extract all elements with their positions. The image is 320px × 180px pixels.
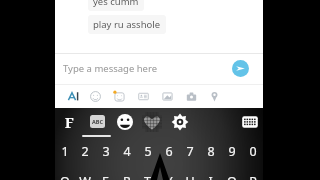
- button[interactable]: 3: [95, 142, 116, 160]
- staticText: 3: [102, 143, 110, 160]
- button[interactable]: Camera: [183, 88, 200, 105]
- button[interactable]: 7: [179, 142, 200, 160]
- staticText: P: [249, 173, 257, 180]
- staticText: 1: [61, 143, 69, 160]
- button[interactable]: Q: [55, 172, 75, 180]
- button[interactable]: Contact: [135, 88, 152, 105]
- button[interactable]: W: [75, 172, 95, 180]
- button[interactable]: 1: [55, 142, 75, 160]
- button[interactable]: P: [242, 172, 263, 180]
- staticText: Type a message here: [63, 62, 158, 75]
- button[interactable]: I: [200, 172, 221, 180]
- staticText: Y: [165, 173, 173, 180]
- button[interactable]: Stickers: [111, 88, 128, 105]
- staticText: 7: [186, 143, 194, 160]
- button[interactable]: 0: [242, 142, 263, 160]
- button[interactable]: play ru asshole: [88, 15, 166, 34]
- staticText: U: [185, 173, 195, 180]
- staticText: O: [227, 173, 237, 180]
- button[interactable]: GIFs: [142, 112, 162, 132]
- button[interactable]: SwiftKey: [59, 112, 79, 132]
- button[interactable]: Location: [206, 88, 223, 105]
- button[interactable]: R: [116, 172, 137, 180]
- button[interactable]: E: [95, 172, 116, 180]
- staticText: E: [102, 173, 109, 180]
- staticText: ABC: [92, 118, 103, 125]
- button[interactable]: O: [221, 172, 242, 180]
- staticText: R: [123, 173, 131, 180]
- button[interactable]: T: [137, 172, 158, 180]
- button[interactable]: Keyboard: [240, 112, 260, 132]
- button[interactable]: Send: [232, 60, 249, 77]
- button[interactable]: Text formatting: [64, 88, 81, 105]
- button[interactable]: 9: [221, 142, 242, 160]
- staticText: 5: [144, 143, 152, 160]
- staticText: F: [65, 113, 74, 132]
- button[interactable]: Emoji: [87, 88, 104, 105]
- staticText: T: [144, 173, 151, 180]
- button[interactable]: 6: [158, 142, 179, 160]
- staticText: 6: [165, 143, 173, 160]
- button[interactable]: 2: [75, 142, 95, 160]
- button[interactable]: 5: [137, 142, 158, 160]
- button[interactable]: Settings: [170, 112, 190, 132]
- button[interactable]: Type a message here: [55, 54, 263, 83]
- button[interactable]: 4: [116, 142, 137, 160]
- button[interactable]: yes cumm: [88, 0, 144, 11]
- staticText: Q: [60, 173, 70, 180]
- staticText: 8: [207, 143, 215, 160]
- button[interactable]: Emoji: [115, 112, 135, 132]
- staticText: 0: [249, 143, 257, 160]
- button[interactable]: U: [179, 172, 200, 180]
- staticText: 4: [123, 143, 131, 160]
- button[interactable]: Y: [158, 172, 179, 180]
- staticText: I: [208, 173, 213, 180]
- button[interactable]: 8: [200, 142, 221, 160]
- staticText: W: [79, 173, 91, 180]
- staticText: 2: [81, 143, 89, 160]
- button[interactable]: ABC keyboard: [90, 115, 105, 128]
- staticText: 9: [228, 143, 236, 160]
- button[interactable]: Gallery: [159, 88, 176, 105]
- staticText: yes cumm: [93, 0, 139, 8]
- staticText: play ru asshole: [93, 18, 161, 31]
